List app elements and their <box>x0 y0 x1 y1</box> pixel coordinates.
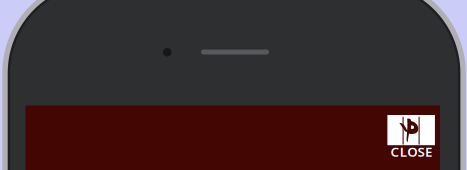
button[interactable]: Closed <box>387 115 435 157</box>
staticText: CLOSE <box>390 143 432 160</box>
